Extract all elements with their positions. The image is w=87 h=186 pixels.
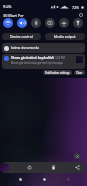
button[interactable]: Ekran görüntüsü kaydedildi (2, 54, 85, 69)
staticText: Isıtma durumunda (11, 46, 40, 50)
button[interactable]: Isıtma durumunda (2, 43, 85, 53)
staticText: Device control (10, 34, 33, 39)
button[interactable]: Screen record (45, 18, 55, 28)
button[interactable]: Device control (2, 33, 41, 40)
button[interactable]: Close (74, 153, 80, 159)
staticText: 72% (72, 5, 80, 10)
button[interactable]: Settings (78, 12, 84, 18)
button[interactable]: Flashlight (73, 18, 83, 28)
staticText: 9:26 (3, 4, 12, 10)
staticText: 30 Mart Per (3, 13, 24, 18)
button[interactable]: Bluetooth (31, 18, 41, 28)
button[interactable]: Back (63, 174, 73, 184)
button[interactable]: Home (39, 174, 49, 184)
staticText: Ekran görüntünüzü görmek için buraya dok… (11, 61, 75, 65)
button[interactable]: Edit (25, 163, 34, 172)
button[interactable]: Media output (45, 33, 85, 40)
button[interactable]: Wi-Fi (3, 18, 13, 28)
staticText: 3:26 PM (55, 56, 65, 60)
button[interactable]: Screenshot preview (0, 163, 9, 172)
button[interactable]: Notification settings (43, 70, 72, 75)
staticText: Clear (76, 71, 83, 75)
button[interactable]: Clear (74, 70, 85, 75)
button[interactable]: Airplane mode (59, 18, 69, 28)
staticText: Ekran görüntüsü kaydedildi (11, 56, 54, 60)
staticText: Notification settings (45, 71, 70, 75)
staticText: Media output (54, 34, 76, 39)
button[interactable]: Sound (17, 18, 27, 28)
button[interactable]: Delete (49, 163, 58, 172)
button[interactable]: Share (73, 163, 82, 172)
button[interactable]: Recents (15, 174, 25, 184)
